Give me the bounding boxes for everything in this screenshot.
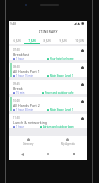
staticText: 1 hour 30 min [16,108,34,111]
staticText: 10:00 [13,99,20,103]
staticText: 1 hour [16,125,25,128]
button[interactable]: Back [9,148,35,160]
button[interactable]: Home [35,148,61,160]
staticText: All Hands Part 1 [13,69,40,74]
button[interactable]: 9 JUN [55,34,71,43]
button[interactable]: 11:30 [9,114,87,128]
staticText: 7 JUN [28,39,36,43]
staticText: All Hands Part 2 [13,103,40,108]
staticText: Lunch & networking [13,120,48,125]
button[interactable]: Add to my agenda [80,48,85,53]
staticText: 07:30 [13,48,20,52]
button[interactable]: 08:30 [9,63,87,77]
staticText: Break [13,86,23,91]
staticText: 1 hour 15 min [16,74,34,77]
button[interactable]: Add to my agenda [80,65,85,70]
staticText: Main Stage, Level 1 [50,108,74,111]
staticText: 15 min [16,91,25,94]
button[interactable]: 09:45 [9,80,87,94]
button[interactable]: 7 JUN [24,34,39,43]
staticText: Atrium and outdoor lawn [43,125,74,128]
button[interactable]: My Agenda [48,136,87,148]
staticText: 8 JUN [43,39,51,43]
button[interactable]: 6 JUN [9,34,24,43]
button[interactable]: Add to my agenda [80,82,85,87]
staticText: 9:48 [10,22,16,26]
button[interactable]: 8 JUN [39,34,55,43]
staticText: My Agenda [61,142,75,146]
staticText: 1 hour [16,57,25,60]
staticText: ITINERARY [39,29,58,34]
staticText: Main Stage, Level 1 [50,74,74,77]
button[interactable]: 10 JUN [71,34,87,43]
staticText: 09:45 [13,82,20,86]
button[interactable]: 10:00 [9,97,87,111]
staticText: 9 JUN [59,39,67,43]
staticText: Breakfast [13,52,29,57]
staticText: 11:30 [13,116,20,120]
button[interactable]: Add to my agenda [80,116,85,121]
staticText: 10 JUN [75,39,84,43]
button[interactable]: Add to my agenda [80,99,85,104]
button[interactable]: Itinerary [9,136,48,148]
staticText: 6 JUN [13,39,21,43]
staticText: 08:30 [13,65,20,69]
staticText: Itinerary [23,142,34,146]
button[interactable]: 07:30 [9,46,87,60]
staticText: Your hotel or home [50,57,74,60]
staticText: Foyer and outdoor cafe [45,91,74,94]
button[interactable]: Recent apps [61,148,87,160]
